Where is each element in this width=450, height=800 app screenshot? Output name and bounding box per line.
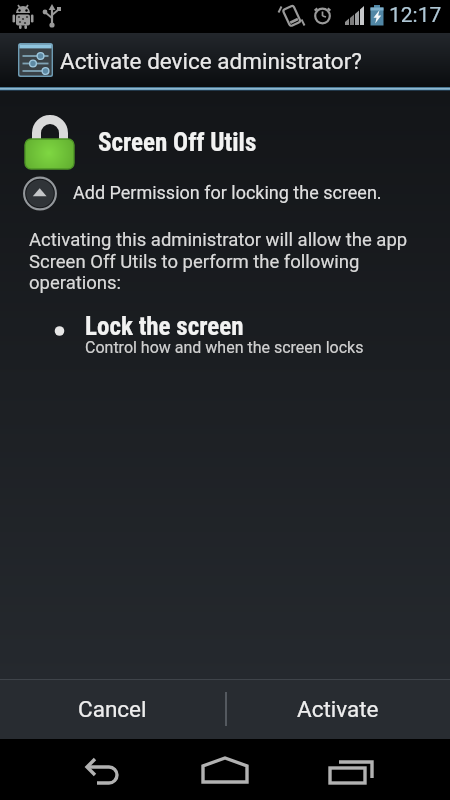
button[interactable]: Activate — [225, 679, 450, 739]
button[interactable] — [300, 739, 450, 800]
button[interactable]: Cancel — [0, 679, 225, 739]
button[interactable] — [0, 739, 150, 800]
staticText: Screen Off Utils — [98, 128, 257, 157]
staticText: Add Permission for locking the screen. — [73, 182, 382, 203]
staticText: Activating this administrator will allow… — [29, 229, 408, 293]
staticText: 12:17 — [389, 3, 442, 28]
staticText: Lock the screen — [85, 312, 244, 341]
staticText: Cancel — [78, 696, 147, 722]
staticText: Activate device administrator? — [60, 48, 362, 74]
staticText: Control how and when the screen locks — [85, 338, 364, 357]
button[interactable] — [23, 177, 57, 211]
button[interactable] — [150, 739, 300, 800]
staticText: Activate — [297, 696, 379, 722]
